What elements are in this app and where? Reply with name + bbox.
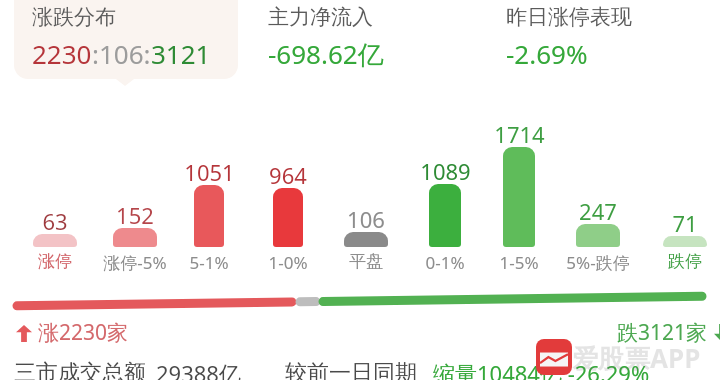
staticText: 29388亿	[156, 358, 241, 380]
button[interactable]	[344, 232, 388, 247]
button[interactable]: 涨跌分布	[14, 0, 238, 79]
staticText: 主力净流入	[268, 4, 373, 30]
staticText: 涨停	[38, 251, 72, 272]
button[interactable]	[429, 184, 461, 247]
staticText: 964	[269, 160, 307, 190]
staticText: 爱股票APP	[572, 340, 701, 376]
staticText: 涨跌分布	[32, 4, 116, 30]
staticText: 1089	[420, 156, 471, 186]
staticText: 昨日涨停表现	[506, 4, 632, 30]
staticText: 跌3121家	[617, 318, 708, 347]
button[interactable]	[33, 234, 77, 247]
staticText: 1-0%	[268, 251, 308, 274]
staticText: 1714	[494, 119, 545, 149]
staticText: 缩量10484亿 -26.29%	[433, 358, 650, 380]
button[interactable]: 主力净流入	[250, 0, 476, 79]
staticText: 71	[672, 208, 698, 238]
button[interactable]: 跌3121家	[617, 318, 720, 347]
staticText: 1051	[184, 157, 235, 187]
staticText: :106:	[92, 36, 151, 71]
staticText: 106	[347, 204, 385, 234]
staticText: 0-1%	[425, 251, 465, 274]
staticText: 247	[579, 196, 617, 226]
staticText: 5%-跌停	[566, 251, 630, 274]
staticText: 涨2230家	[38, 318, 129, 347]
other: Down	[714, 324, 720, 342]
staticText: 三市成交总额	[14, 359, 146, 380]
button[interactable]	[576, 224, 620, 247]
staticText: 涨停-5%	[103, 251, 167, 274]
button[interactable]	[663, 236, 707, 247]
staticText: 平盘	[349, 251, 383, 272]
button[interactable]	[194, 185, 224, 247]
staticText: -2.69%	[506, 36, 588, 71]
staticText: 63	[42, 206, 68, 236]
staticText: 1-5%	[499, 251, 539, 274]
staticText: 2230	[32, 36, 92, 71]
button[interactable]	[503, 147, 535, 247]
other: Up	[16, 324, 32, 342]
staticText: -698.62亿	[268, 36, 384, 72]
button[interactable]	[273, 188, 303, 247]
staticText: 152	[116, 200, 154, 230]
staticText: 较前一日同期	[285, 359, 417, 380]
button[interactable]: 爱股票 App	[536, 339, 572, 375]
staticText: 跌停	[668, 251, 702, 272]
staticText: 3121	[151, 36, 211, 71]
button[interactable]	[113, 228, 157, 247]
staticText: 5-1%	[189, 251, 229, 274]
button[interactable]: 昨日涨停表现	[488, 0, 714, 79]
button[interactable]: Up	[16, 318, 129, 347]
